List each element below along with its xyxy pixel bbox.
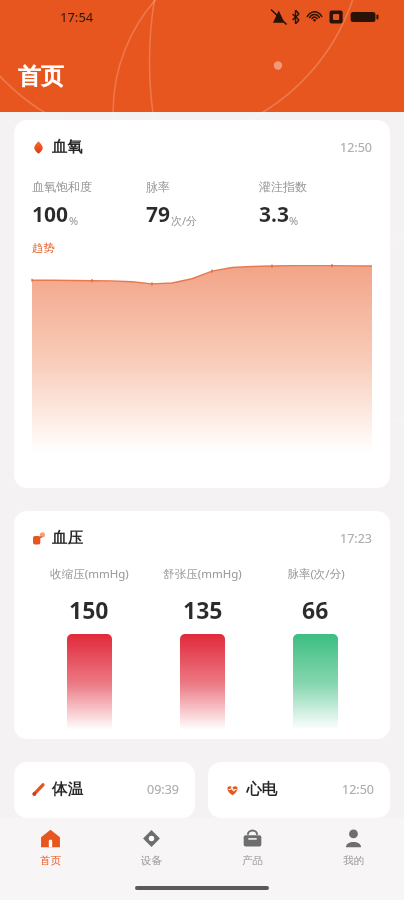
other: 产品: [242, 828, 263, 849]
staticText: 心电: [246, 779, 277, 799]
other: 首页: [40, 828, 61, 849]
staticText: 12:50: [340, 139, 372, 156]
staticText: 灌注指数: [259, 179, 307, 194]
button[interactable]: 心电: [208, 762, 390, 818]
button[interactable]: 首页: [0, 822, 101, 873]
staticText: 收缩压(mmHg): [50, 566, 129, 582]
staticText: 12:50: [342, 781, 374, 798]
button[interactable]: 血氧: [14, 120, 390, 488]
staticText: 血氧: [52, 137, 83, 157]
staticText: 首页: [40, 854, 61, 867]
button[interactable]: 产品: [202, 822, 303, 873]
staticText: 首页: [18, 62, 64, 91]
staticText: 脉率: [146, 179, 170, 194]
staticText: 趋势: [32, 241, 55, 255]
staticText: 3.3: [259, 200, 289, 229]
staticText: 血氧饱和度: [32, 179, 92, 194]
staticText: 舒张压(mmHg): [163, 566, 242, 582]
staticText: 135: [183, 594, 223, 625]
staticText: 设备: [141, 854, 162, 867]
staticText: 09:39: [147, 781, 179, 798]
staticText: 产品: [242, 854, 263, 867]
staticText: 我的: [343, 854, 364, 867]
button[interactable]: 设备: [101, 822, 202, 873]
staticText: 脉率(次/分): [287, 566, 345, 582]
other: 设备: [141, 828, 162, 849]
staticText: 体温: [52, 779, 83, 799]
staticText: 次/分: [171, 213, 198, 228]
staticText: 100: [32, 200, 69, 229]
staticText: 79: [146, 200, 171, 229]
staticText: 17:54: [60, 8, 94, 26]
staticText: %: [69, 213, 79, 228]
button[interactable]: 我的: [303, 822, 404, 873]
staticText: 血压: [52, 528, 83, 548]
button[interactable]: 血压: [14, 511, 390, 739]
staticText: 66: [302, 594, 329, 625]
button[interactable]: 体温: [14, 762, 195, 818]
staticText: 17:23: [340, 530, 372, 547]
staticText: 150: [69, 594, 109, 625]
other: 我的: [343, 828, 364, 849]
staticText: %: [289, 213, 299, 228]
